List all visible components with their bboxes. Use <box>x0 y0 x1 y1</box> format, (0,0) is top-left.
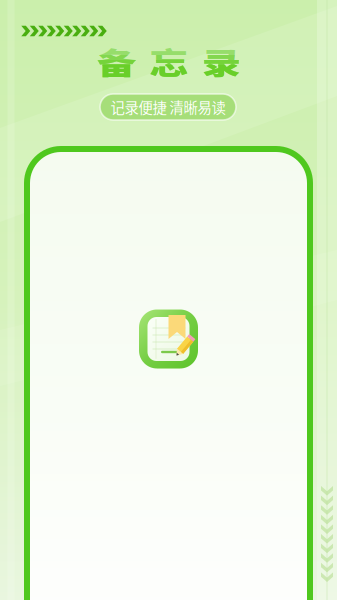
staticText: 记录便捷 清晰易读 <box>110 97 225 117</box>
staticText: 备忘录 <box>95 32 243 90</box>
staticText: 备忘录 <box>95 32 243 90</box>
staticText: 备忘录 <box>95 32 243 90</box>
staticText: 备忘录 <box>95 32 243 90</box>
